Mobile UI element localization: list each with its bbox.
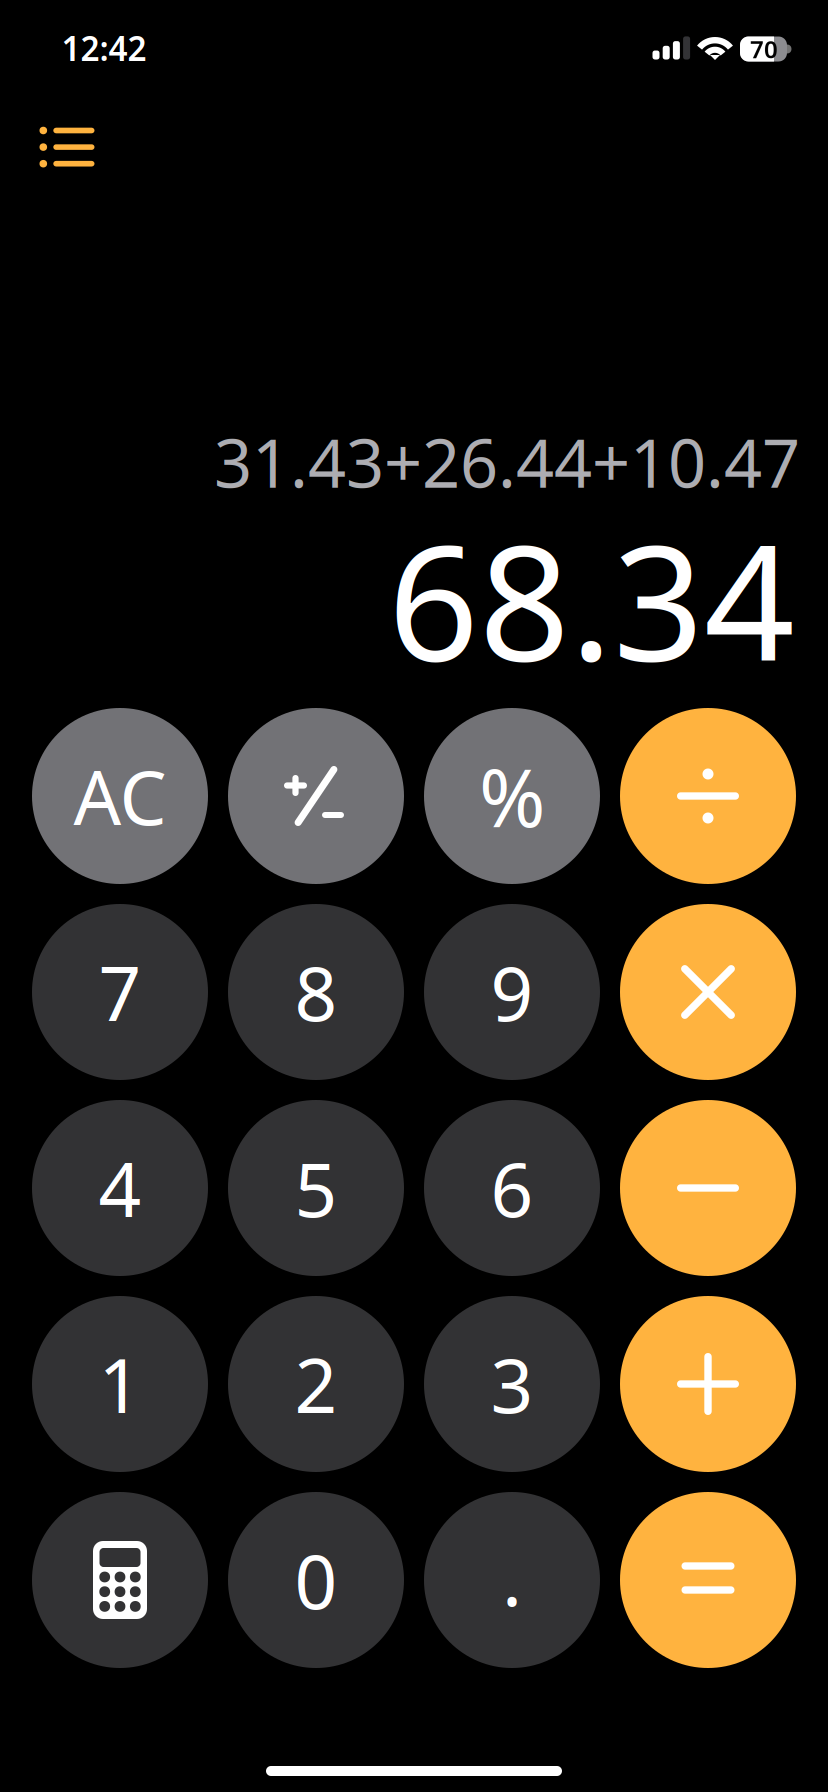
staticText: 31.43+26.44+10.47	[214, 418, 800, 506]
button[interactable]: 5	[228, 1100, 404, 1276]
staticText: 68.34	[388, 494, 795, 704]
staticText: 6	[490, 1138, 533, 1238]
staticText: 0	[294, 1530, 337, 1630]
staticText: 2	[294, 1334, 337, 1434]
staticText: 9	[490, 942, 533, 1042]
button[interactable]: .	[424, 1492, 600, 1668]
button[interactable]: 1	[32, 1296, 208, 1472]
button[interactable]: Calculator	[32, 1492, 208, 1668]
button[interactable]: 9	[424, 904, 600, 1080]
button[interactable]: Plus minus	[228, 708, 404, 884]
button[interactable]: 7	[32, 904, 208, 1080]
staticText: %	[479, 743, 545, 849]
staticText: AC	[73, 746, 166, 846]
button[interactable]: 3	[424, 1296, 600, 1472]
button[interactable]: 0	[228, 1492, 404, 1668]
button[interactable]: Divide	[620, 708, 796, 884]
button[interactable]: 4	[32, 1100, 208, 1276]
staticText: 4	[98, 1138, 141, 1238]
staticText: 7	[98, 942, 141, 1042]
staticText: 12:42	[61, 26, 146, 70]
button[interactable]: Minus	[620, 1100, 796, 1276]
staticText: 70	[750, 33, 778, 65]
staticText: 5	[294, 1138, 337, 1238]
staticText: .	[502, 1527, 522, 1627]
button[interactable]: AC	[32, 708, 208, 884]
button[interactable]: Plus	[620, 1296, 796, 1472]
button[interactable]: Multiply	[620, 904, 796, 1080]
button[interactable]: Equals	[620, 1492, 796, 1668]
button[interactable]: 6	[424, 1100, 600, 1276]
staticText: 1	[98, 1334, 141, 1434]
staticText: 3	[490, 1334, 533, 1434]
staticText: 8	[294, 942, 337, 1042]
button[interactable]: History	[23, 103, 111, 191]
button[interactable]: 8	[228, 904, 404, 1080]
button[interactable]: %	[424, 708, 600, 884]
button[interactable]: 2	[228, 1296, 404, 1472]
